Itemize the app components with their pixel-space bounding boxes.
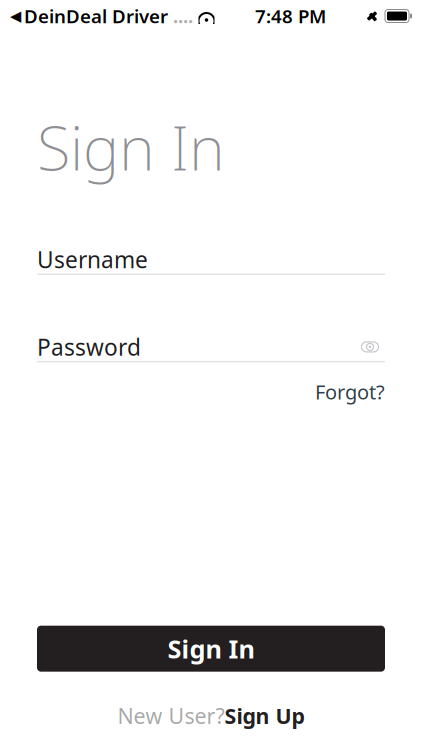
staticText: ◀ [10,8,21,24]
button[interactable]: Sign In [37,626,385,672]
button[interactable]: New User? [117,696,304,736]
staticText: New User? [117,702,224,730]
staticText: Sign In [167,632,254,665]
staticText: Forgot? [315,378,385,405]
staticText: Username [37,244,148,274]
staticText: 7:48 PM [255,4,326,28]
button[interactable]: Show password [355,334,385,360]
staticText: Sign Up [224,702,304,730]
staticText: .... [168,4,193,28]
staticText: Password [37,332,141,362]
staticText: DeinDeal Driver [24,4,168,28]
staticText: Sign In [37,106,225,187]
button[interactable]: Forgot? [315,374,385,409]
